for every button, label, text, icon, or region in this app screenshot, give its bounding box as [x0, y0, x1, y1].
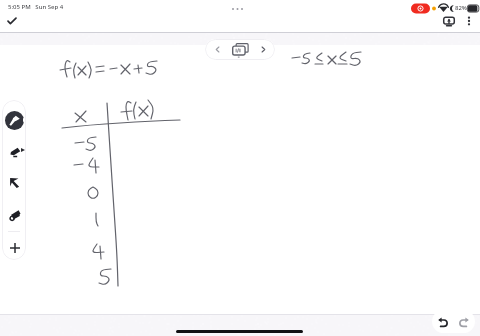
button[interactable]: Pen — [5, 111, 24, 130]
button[interactable]: Cast — [439, 11, 459, 31]
button[interactable]: Previous page — [207, 39, 227, 60]
button[interactable]: Add tool — [6, 239, 23, 256]
button[interactable]: Pages — [228, 39, 252, 60]
button[interactable]: Done — [3, 12, 21, 30]
staticText: 5:05 PM Sun Sep 4 — [8, 3, 64, 11]
button[interactable]: More options — [459, 11, 479, 31]
staticText: 82% — [455, 4, 467, 12]
button[interactable]: Next page — [253, 39, 273, 60]
button[interactable]: Highlighter — [6, 142, 23, 159]
button[interactable]: Select — [6, 174, 23, 191]
button[interactable]: Eraser — [6, 206, 23, 223]
button[interactable]: Redo — [454, 310, 474, 333]
button[interactable]: Undo — [433, 310, 453, 333]
